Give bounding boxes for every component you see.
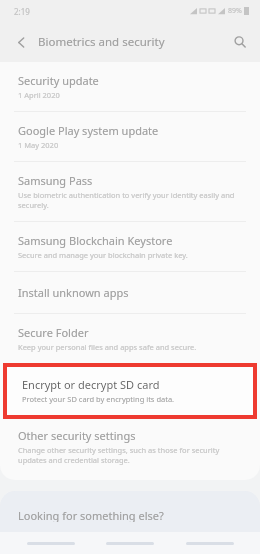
staticText: Install unknown apps: [18, 285, 129, 300]
staticText: Encrypt or decrypt SD card: [22, 377, 160, 392]
staticText: Biometrics and security: [38, 34, 165, 50]
button[interactable]: Samsung Blockchain Keystore: [0, 222, 260, 271]
button[interactable]: Security update: [0, 62, 260, 111]
staticText: Protect your SD card by encrypting its d…: [22, 394, 175, 404]
button[interactable]: Search: [227, 29, 253, 55]
button[interactable]: Other security settings: [0, 419, 260, 474]
staticText: 1 May 2020: [18, 140, 59, 150]
staticText: 1 April 2020: [18, 90, 60, 100]
staticText: 2:19: [14, 6, 30, 17]
staticText: Secure Folder: [18, 325, 89, 340]
staticText: Samsung Blockchain Keystore: [18, 233, 173, 248]
button[interactable]: Samsung Pass: [0, 162, 260, 221]
button[interactable]: Back: [181, 535, 239, 551]
staticText: Use biometric authentication to verify y…: [18, 190, 244, 210]
button[interactable]: Google Play system update: [0, 112, 260, 161]
staticText: Keep your personal files and apps safe a…: [18, 342, 197, 352]
button[interactable]: Recents: [22, 535, 80, 551]
button[interactable]: Install unknown apps: [0, 272, 260, 313]
staticText: Looking for something else?: [18, 508, 164, 522]
button[interactable]: Encrypt or decrypt SD card: [7, 367, 253, 415]
button[interactable]: Home: [101, 535, 159, 551]
staticText: Security update: [18, 73, 99, 88]
staticText: Secure and manage your blockchain privat…: [18, 250, 188, 260]
button[interactable]: Secure Folder: [0, 314, 260, 363]
staticText: 89%: [228, 6, 242, 16]
staticText: Google Play system update: [18, 123, 159, 138]
staticText: Change other security settings, such as …: [18, 445, 244, 465]
staticText: Other security settings: [18, 428, 136, 443]
staticText: Samsung Pass: [18, 173, 93, 188]
button[interactable]: Back: [8, 29, 34, 55]
